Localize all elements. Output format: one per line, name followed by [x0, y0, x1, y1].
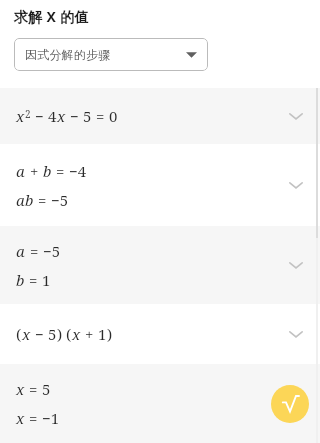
staticText: x: [16, 379, 25, 399]
staticText: 因式分解的步骤: [25, 47, 186, 62]
staticText: 4: [48, 106, 57, 126]
staticText: ): [107, 324, 113, 344]
staticText: b: [43, 161, 52, 181]
button[interactable]: Expand step: [283, 252, 309, 278]
staticText: 5: [42, 379, 51, 399]
button[interactable]: Check answer: [271, 385, 309, 423]
staticText: ) (: [57, 324, 72, 344]
button[interactable]: 因式分解的步骤: [14, 38, 208, 71]
staticText: b: [16, 270, 25, 290]
staticText: =: [25, 270, 42, 290]
staticText: +: [81, 324, 98, 344]
button[interactable]: a: [0, 144, 320, 226]
staticText: 1: [42, 270, 51, 290]
staticText: =: [34, 190, 51, 210]
button[interactable]: x: [0, 88, 320, 144]
staticText: −1: [42, 408, 60, 428]
button[interactable]: x: [0, 364, 320, 443]
staticText: x: [22, 324, 31, 344]
staticText: x: [72, 324, 81, 344]
staticText: =: [26, 241, 43, 261]
button[interactable]: Expand step: [283, 103, 309, 129]
staticText: (: [16, 324, 22, 344]
staticText: −: [31, 106, 48, 126]
staticText: x: [57, 106, 66, 126]
staticText: 5: [48, 324, 57, 344]
staticText: 1: [98, 324, 107, 344]
staticText: −: [66, 106, 83, 126]
staticText: 求解 X 的值: [14, 7, 89, 26]
button[interactable]: Expand step: [283, 172, 309, 198]
button[interactable]: a: [0, 226, 320, 304]
staticText: x: [16, 106, 25, 126]
staticText: −4: [69, 161, 87, 181]
staticText: =: [92, 106, 109, 126]
staticText: x: [16, 408, 25, 428]
staticText: −5: [43, 241, 61, 261]
staticText: +: [26, 161, 43, 181]
staticText: =: [25, 379, 42, 399]
staticText: 0: [109, 106, 118, 126]
staticText: a: [16, 241, 26, 261]
staticText: =: [25, 408, 42, 428]
staticText: −5: [51, 190, 69, 210]
staticText: =: [52, 161, 69, 181]
staticText: 2: [25, 107, 31, 121]
staticText: −: [31, 324, 48, 344]
staticText: a: [16, 161, 26, 181]
button[interactable]: Expand step: [283, 321, 309, 347]
staticText: ab: [16, 190, 34, 210]
staticText: 5: [83, 106, 92, 126]
button[interactable]: (: [0, 304, 320, 364]
